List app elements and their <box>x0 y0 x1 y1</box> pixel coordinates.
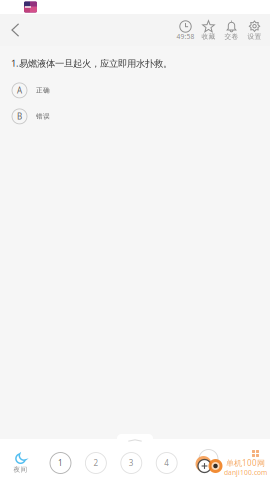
staticText: B <box>17 111 22 122</box>
staticText: 错误 <box>36 112 50 120</box>
staticText: 交卷 <box>224 32 238 41</box>
staticText: 夜间 <box>13 465 27 474</box>
button[interactable]: 49:58 <box>174 18 197 42</box>
button[interactable]: 1 <box>50 452 71 473</box>
staticText: A <box>17 85 22 96</box>
button[interactable]: A <box>0 77 270 103</box>
staticText: 单机100网 <box>226 458 265 468</box>
staticText: 49:58 <box>176 32 194 41</box>
button[interactable]: 2 <box>85 452 106 473</box>
staticText: 1.易燃液体一旦起火，应立即用水扑救。 <box>11 57 172 69</box>
button[interactable]: B <box>0 103 270 129</box>
button[interactable]: Expand answer sheet <box>117 434 153 443</box>
staticText: 1 <box>58 458 63 468</box>
button[interactable]: 收藏 <box>197 18 220 42</box>
button[interactable]: 交卷 <box>220 18 243 42</box>
staticText: 设置 <box>247 32 261 41</box>
button[interactable]: 设置 <box>243 18 266 42</box>
button[interactable]: 4 <box>156 452 177 473</box>
staticText: danji100.com <box>224 468 267 477</box>
button[interactable]: Back <box>0 14 40 46</box>
button[interactable]: 夜间 <box>0 450 41 476</box>
staticText: 4 <box>164 458 169 468</box>
button[interactable]: 3 <box>121 452 142 473</box>
staticText: 2 <box>93 458 98 468</box>
staticText: 收藏 <box>201 32 215 41</box>
staticText: 3 <box>129 458 134 468</box>
staticText: 正确 <box>36 86 50 94</box>
